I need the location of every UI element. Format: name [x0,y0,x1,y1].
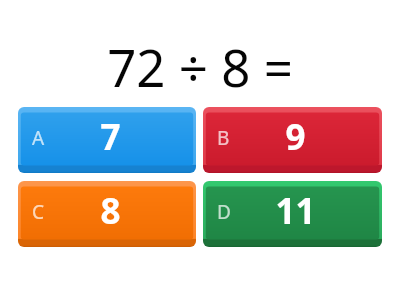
button[interactable]: A [18,107,196,173]
button[interactable]: B [203,107,382,173]
staticText: D [217,199,231,225]
staticText: 72 ÷ 8 = [107,32,293,101]
staticText: B [217,125,230,151]
staticText: A [32,125,45,151]
staticText: 7 [100,113,121,161]
staticText: 11 [275,187,316,235]
button[interactable]: C [18,181,196,247]
staticText: 8 [100,187,121,235]
button[interactable]: D [203,181,382,247]
staticText: C [32,199,45,225]
staticText: 9 [285,113,306,161]
